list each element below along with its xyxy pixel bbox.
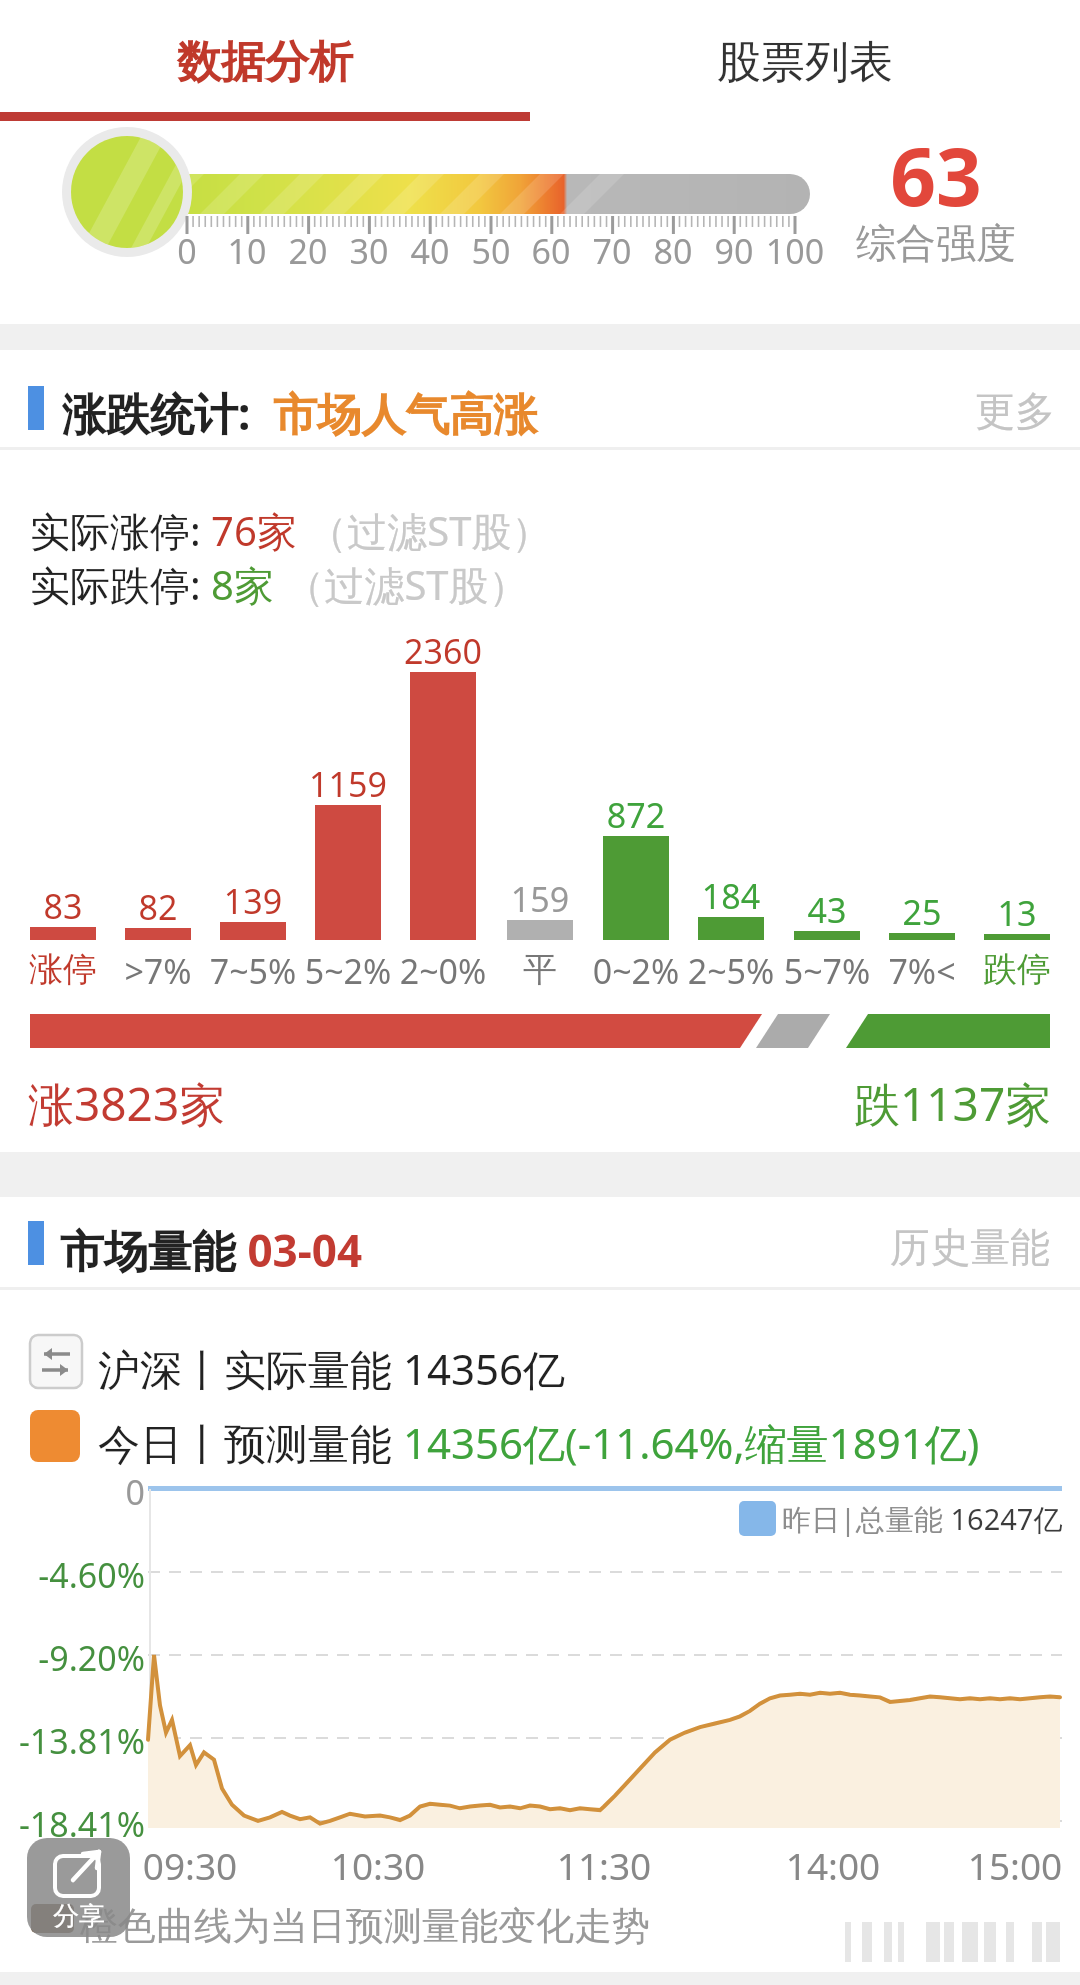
- staticText: 70: [572, 228, 652, 274]
- staticText: 市场量能 03-04: [60, 1220, 363, 1280]
- staticText: 159: [480, 876, 600, 922]
- button[interactable]: 分享: [27, 1838, 130, 1937]
- staticText: 涨3823家: [28, 1072, 226, 1135]
- staticText: 20: [268, 228, 348, 274]
- staticText: 跌停: [957, 948, 1077, 991]
- button[interactable]: 数据分析: [0, 25, 530, 100]
- staticText: 橙色曲线为当日预测量能变化走势: [80, 1902, 650, 1950]
- staticText: 14:00: [763, 1840, 903, 1890]
- staticText: 2~5%: [671, 948, 791, 994]
- staticText: 80: [633, 228, 713, 274]
- staticText: 7~5%: [193, 948, 313, 994]
- staticText: 实际涨停: 76家 （过滤ST股）: [30, 503, 552, 558]
- staticText: 63: [856, 120, 1016, 214]
- staticText: 2~0%: [383, 948, 503, 994]
- staticText: -18.41%: [0, 1801, 145, 1847]
- button[interactable]: 股票列表: [530, 25, 1080, 100]
- staticText: 今日丨预测量能 14356亿(-11.64%,缩量1891亿): [98, 1414, 980, 1471]
- staticText: 分享: [53, 1900, 105, 1933]
- staticText: 13: [957, 890, 1077, 936]
- staticText: 43: [767, 887, 887, 933]
- staticText: 昨日|总量能 16247亿: [782, 1499, 1063, 1539]
- staticText: -9.20%: [0, 1635, 145, 1681]
- staticText: 100: [755, 228, 835, 274]
- staticText: 2360: [383, 628, 503, 674]
- staticText: 09:30: [120, 1840, 260, 1890]
- staticText: 184: [671, 873, 791, 919]
- staticText: 139: [193, 878, 313, 924]
- staticText: 0~2%: [576, 948, 696, 994]
- staticText: 11:30: [534, 1840, 674, 1890]
- staticText: 50: [451, 228, 531, 274]
- staticText: 60: [511, 228, 591, 274]
- staticText: 历史量能: [890, 1222, 1050, 1272]
- staticText: 更多: [975, 386, 1055, 436]
- staticText: 数据分析: [177, 35, 353, 90]
- staticText: 15:00: [945, 1840, 1080, 1890]
- staticText: 7%<: [862, 948, 982, 994]
- staticText: 40: [390, 228, 470, 274]
- staticText: 83: [3, 883, 123, 929]
- staticText: -13.81%: [0, 1718, 145, 1764]
- staticText: 跌1137家: [854, 1072, 1052, 1128]
- staticText: 实际跌停: 8家 （过滤ST股）: [30, 557, 529, 612]
- staticText: 平: [480, 948, 600, 991]
- staticText: 25: [862, 889, 982, 935]
- staticText: 30: [329, 228, 409, 274]
- staticText: 股票列表: [717, 35, 893, 90]
- staticText: 综合强度: [846, 218, 1026, 268]
- staticText: 0: [0, 1469, 145, 1515]
- button[interactable]: 更多: [945, 386, 1055, 436]
- staticText: >7%: [98, 948, 218, 994]
- staticText: 82: [98, 884, 218, 930]
- staticText: 涨跌统计: 市场人气高涨: [62, 383, 538, 443]
- staticText: 1159: [288, 761, 408, 807]
- button[interactable]: 历史量能: [875, 1222, 1050, 1272]
- staticText: 5~2%: [288, 948, 408, 994]
- staticText: 涨停: [3, 948, 123, 991]
- staticText: 90: [694, 228, 774, 274]
- staticText: -4.60%: [0, 1552, 145, 1598]
- staticText: 10:30: [308, 1840, 448, 1890]
- staticText: 沪深丨实际量能 14356亿: [98, 1340, 566, 1397]
- staticText: 10: [207, 228, 287, 274]
- staticText: 5~7%: [767, 948, 887, 994]
- staticText: 872: [576, 792, 696, 838]
- staticText: 0: [147, 228, 227, 274]
